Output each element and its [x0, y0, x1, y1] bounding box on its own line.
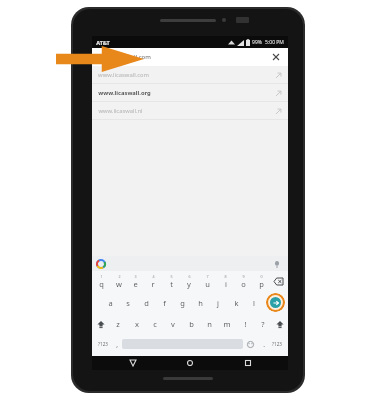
button[interactable]: ?: [254, 313, 272, 334]
button[interactable]: 9: [234, 271, 252, 292]
staticText: www.licaswall.org: [98, 89, 151, 97]
button[interactable]: 1: [93, 271, 110, 292]
button[interactable]: c: [146, 313, 164, 334]
staticText: ?123: [272, 341, 282, 347]
staticText: ,: [116, 340, 118, 349]
staticText: x: [135, 319, 139, 329]
button[interactable]: l: [245, 292, 263, 313]
button[interactable]: a: [102, 292, 119, 313]
staticText: ?: [261, 319, 265, 329]
button[interactable]: 8: [216, 271, 234, 292]
staticText: 7: [206, 274, 209, 279]
button[interactable]: k: [227, 292, 245, 313]
staticText: o: [241, 279, 246, 289]
staticText: v: [171, 319, 175, 329]
staticText: 99%: [252, 39, 262, 46]
button[interactable]: 6: [180, 271, 198, 292]
button[interactable]: Recents: [231, 356, 265, 370]
staticText: www.licaswall.com: [98, 53, 151, 61]
button[interactable]: n: [200, 313, 218, 334]
staticText: 1: [100, 274, 103, 279]
staticText: !: [244, 319, 247, 329]
button[interactable]: g: [173, 292, 191, 313]
staticText: 5:00 PM: [265, 39, 284, 46]
button[interactable]: !: [236, 313, 254, 334]
staticText: r: [151, 279, 155, 289]
button[interactable]: s: [119, 292, 137, 313]
button[interactable]: 0: [252, 271, 270, 292]
staticText: g: [180, 298, 185, 308]
button[interactable]: m: [218, 313, 236, 334]
button[interactable]: www.licaswall.nl: [92, 102, 288, 120]
staticText: ?123: [98, 341, 108, 347]
button[interactable]: www.licaswall.com: [92, 66, 288, 84]
staticText: k: [234, 298, 239, 308]
staticText: y: [187, 279, 191, 289]
staticText: p: [259, 279, 264, 289]
staticText: www.licaswall.com: [98, 71, 149, 79]
staticText: 4: [152, 274, 155, 279]
staticText: e: [133, 279, 138, 289]
staticText: s: [126, 298, 130, 308]
staticText: a: [108, 298, 113, 308]
staticText: j: [217, 298, 219, 308]
staticText: t: [170, 279, 173, 289]
button[interactable]: Voice input: [272, 259, 282, 269]
button[interactable]: v: [164, 313, 182, 334]
button[interactable]: x: [127, 313, 146, 334]
button[interactable]: 4: [144, 271, 162, 292]
button[interactable]: f: [155, 292, 173, 313]
button[interactable]: 3: [127, 271, 144, 292]
button[interactable]: Home: [173, 356, 207, 370]
button[interactable]: Clear: [270, 51, 282, 63]
button[interactable]: .: [258, 334, 269, 354]
button[interactable]: ,: [111, 334, 122, 354]
button[interactable]: j: [209, 292, 227, 313]
staticText: 5: [170, 274, 173, 279]
staticText: m: [223, 319, 231, 329]
button[interactable]: b: [182, 313, 200, 334]
staticText: u: [205, 279, 210, 289]
staticText: 6: [188, 274, 191, 279]
staticText: w: [116, 279, 122, 289]
button[interactable]: Backspace: [270, 271, 287, 292]
staticText: n: [207, 319, 212, 329]
staticText: 2: [118, 274, 121, 279]
button[interactable]: Shift: [93, 313, 108, 334]
staticText: AT&T: [96, 39, 110, 46]
button[interactable]: d: [137, 292, 155, 313]
button[interactable]: ?123: [269, 334, 285, 354]
button[interactable]: Back: [116, 356, 150, 370]
button[interactable]: ?123: [95, 334, 111, 354]
staticText: i: [225, 279, 227, 289]
staticText: 9: [242, 274, 245, 279]
staticText: 3: [134, 274, 137, 279]
staticText: f: [163, 298, 166, 308]
button[interactable]: z: [108, 313, 127, 334]
staticText: .: [263, 340, 265, 349]
staticText: l: [253, 298, 255, 308]
button[interactable]: Shift: [272, 313, 287, 334]
staticText: www.licaswall.nl: [98, 107, 143, 115]
button[interactable]: h: [191, 292, 209, 313]
button[interactable]: 5: [162, 271, 180, 292]
button[interactable]: 2: [110, 271, 127, 292]
button[interactable]: Enter: [266, 293, 285, 312]
staticText: z: [116, 319, 120, 329]
button[interactable]: www.licaswall.com: [92, 48, 288, 66]
button[interactable]: Emoji: [243, 334, 258, 354]
button[interactable]: www.licaswall.org: [92, 84, 288, 102]
staticText: q: [99, 279, 104, 289]
staticText: d: [144, 298, 149, 308]
staticText: 8: [224, 274, 227, 279]
staticText: h: [198, 298, 203, 308]
button[interactable]: 7: [198, 271, 216, 292]
staticText: b: [189, 319, 194, 329]
staticText: c: [153, 319, 157, 329]
staticText: 0: [260, 274, 263, 279]
